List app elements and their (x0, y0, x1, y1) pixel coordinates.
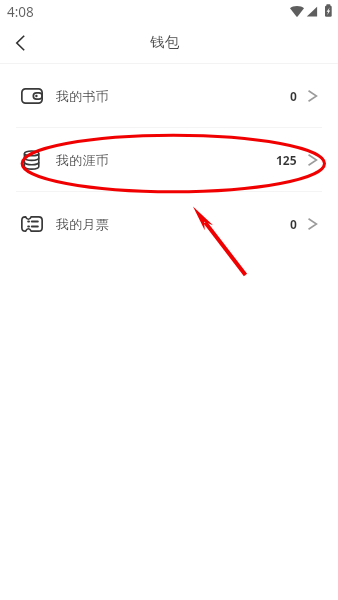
button[interactable]: 我的月票 (0, 192, 338, 255)
button[interactable]: 我的书币 (0, 64, 338, 127)
staticText: 125 (276, 152, 297, 168)
staticText: 0 (290, 216, 297, 232)
staticText: 0 (290, 88, 297, 104)
button[interactable]: 我的涯币 (0, 128, 338, 191)
staticText: 我的涯币 (56, 152, 109, 169)
staticText: 4:08 (7, 3, 34, 21)
staticText: 我的书币 (56, 88, 109, 105)
staticText: 我的月票 (56, 216, 109, 233)
button[interactable]: Back (0, 24, 40, 63)
staticText: 钱包 (150, 33, 179, 51)
